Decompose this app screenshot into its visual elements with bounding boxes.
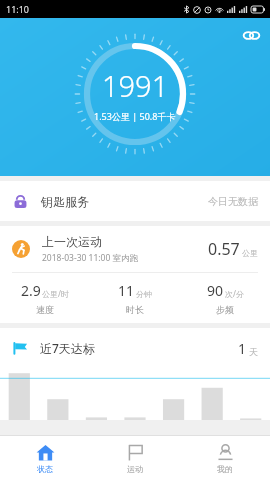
staticText: 2018-03-30 11:00 室内跑 [42, 252, 139, 264]
button[interactable]: 我的 [180, 436, 270, 480]
staticText: 11 [118, 281, 135, 300]
staticText: 步频 [216, 304, 234, 315]
button[interactable]: 近7天达标 [0, 328, 270, 368]
staticText: 次/分 [225, 288, 244, 299]
staticText: 近7天达标 [40, 340, 95, 356]
button[interactable]: 钥匙服务 [0, 181, 270, 221]
staticText: 1 [238, 339, 247, 358]
staticText: 上一次运动 [42, 234, 102, 249]
staticText: 90 [207, 281, 224, 300]
staticText: 2.9 [21, 281, 41, 300]
button[interactable]: 上一次运动 [0, 226, 270, 272]
staticText: 状态 [37, 464, 53, 474]
staticText: 0.57 [208, 238, 240, 260]
staticText: 1991 [102, 66, 169, 105]
staticText: 公里/时 [42, 288, 69, 299]
staticText: 今日无数据 [208, 195, 258, 208]
staticText: 1.53公里 | 50.8千卡 [94, 110, 176, 122]
button[interactable]: 运动 [90, 436, 180, 480]
button[interactable]: 状态 [0, 436, 90, 480]
staticText: 公里 [242, 248, 258, 258]
staticText: 运动 [127, 464, 143, 474]
staticText: 速度 [36, 304, 54, 315]
staticText: 钥匙服务 [41, 194, 89, 209]
staticText: 我的 [217, 464, 233, 474]
button[interactable]: Connect device [239, 23, 263, 47]
staticText: 11:10 [6, 3, 30, 15]
staticText: 分钟 [136, 289, 152, 299]
staticText: 天 [249, 346, 258, 357]
staticText: 时长 [126, 304, 144, 315]
